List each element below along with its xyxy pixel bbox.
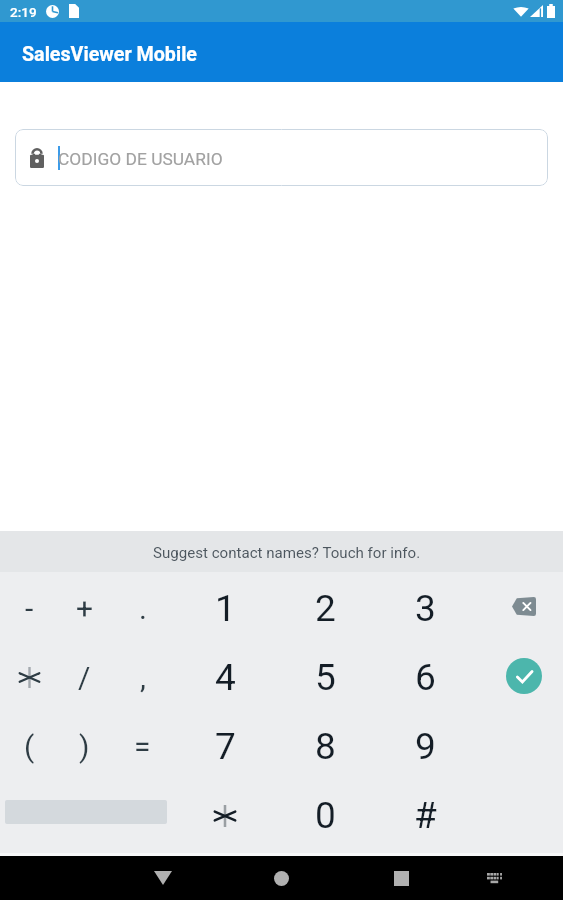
staticText: , (140, 660, 146, 695)
button[interactable]: 5 (275, 641, 375, 710)
button[interactable]: Switch keyboard (467, 856, 523, 900)
button[interactable]: CODIGO DE USUARIO (15, 129, 548, 186)
staticText: CODIGO DE USUARIO (58, 149, 223, 169)
button[interactable]: 6 (375, 641, 475, 710)
staticText: 7 (215, 725, 236, 768)
button[interactable]: ) (59, 710, 110, 779)
staticText: 2 (315, 587, 336, 630)
staticText: # (414, 794, 437, 837)
staticText: = (134, 729, 151, 764)
staticText: 2:19 (10, 4, 37, 20)
staticText: Suggest contact names? Touch for info. (153, 544, 421, 562)
button[interactable]: Suggest contact names? Touch for info. (0, 531, 563, 572)
button[interactable]: + (59, 572, 110, 641)
staticText: 8 (315, 725, 336, 768)
button[interactable]: 9 (375, 710, 475, 779)
staticText: 9 (415, 725, 436, 768)
button[interactable]: 2 (275, 572, 375, 641)
button[interactable] (0, 641, 59, 710)
staticText: 6 (415, 656, 436, 699)
staticText: . (139, 591, 147, 626)
staticText: ( (24, 729, 35, 764)
button[interactable]: ( (0, 710, 59, 779)
button[interactable]: 4 (175, 641, 275, 710)
staticText: 4 (215, 656, 236, 699)
button[interactable]: Backspace (480, 572, 563, 641)
staticText: 3 (415, 587, 436, 630)
staticText: - (25, 591, 34, 626)
button[interactable] (175, 779, 275, 848)
staticText: SalesViewer Mobile (22, 43, 197, 66)
button[interactable]: # (375, 779, 475, 848)
button[interactable]: Recents (373, 856, 429, 900)
button[interactable]: Enter (480, 641, 563, 710)
staticText: 0 (315, 794, 336, 837)
button[interactable]: = (110, 710, 175, 779)
button[interactable]: / (59, 641, 110, 710)
button[interactable]: Back (135, 856, 191, 900)
staticText: 1 (215, 587, 236, 630)
button[interactable]: 1 (175, 572, 275, 641)
button[interactable]: Home (253, 856, 309, 900)
button[interactable]: 3 (375, 572, 475, 641)
staticText: + (76, 591, 94, 626)
button[interactable]: , (110, 641, 175, 710)
staticText: / (78, 660, 91, 695)
staticText: ) (79, 729, 90, 764)
button[interactable]: 0 (275, 779, 375, 848)
button[interactable]: . (110, 572, 175, 641)
staticText: 5 (315, 656, 336, 699)
button[interactable]: 8 (275, 710, 375, 779)
button[interactable]: - (0, 572, 59, 641)
button[interactable]: 7 (175, 710, 275, 779)
